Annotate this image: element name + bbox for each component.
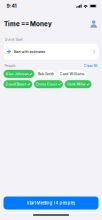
button[interactable]: David Brown [3,80,32,88]
staticText: Carol Williams [60,72,85,76]
staticText: David Brown [5,82,26,86]
staticText: People [4,64,15,68]
staticText: Quick Start [4,37,22,42]
button[interactable]: Emma Davis [34,80,63,88]
staticText: Emma Davis [36,82,57,86]
button[interactable]: Start Meeting (4 people) [3,196,98,209]
staticText: Start Meeting (4 people) [26,200,75,205]
button[interactable]: Clear All [83,64,97,68]
staticText: Clear All [83,64,97,68]
staticText: 9:41 [6,3,16,9]
button[interactable]: Profile [89,20,98,28]
staticText: Frank Miller [67,82,86,86]
staticText: Start with estimates [13,50,45,54]
button[interactable]: Bob Smith [36,70,56,78]
staticText: Bob Smith [38,72,54,76]
staticText: Time == Money [4,20,52,28]
button[interactable]: Start with estimates [3,44,98,60]
button[interactable]: Frank Miller [65,80,91,88]
button[interactable]: Alex Johnson [3,70,34,78]
button[interactable]: Carol Williams [58,70,86,78]
staticText: Alex Johnson [5,72,28,76]
